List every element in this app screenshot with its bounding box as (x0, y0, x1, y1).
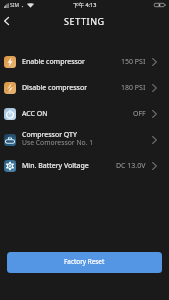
staticText: DC 13.0V (116, 161, 146, 171)
button[interactable]: Disable compressor (0, 75, 169, 101)
button[interactable]: Factory Reset (7, 252, 162, 273)
button[interactable]: ACC ON (0, 101, 169, 127)
button[interactable]: Compressor QTY (0, 127, 169, 153)
staticText: Use Comoressor No. 1 (22, 138, 94, 147)
staticText: Compressor QTY (22, 130, 77, 140)
staticText: OFF (133, 109, 146, 119)
staticText: ACC ON (22, 109, 48, 119)
button[interactable]: Enable compressor (0, 49, 169, 75)
button[interactable]: Min. Battery Voltage (0, 153, 169, 179)
staticText: Min. Battery Voltage (22, 161, 89, 171)
staticText: Enable compressor (22, 57, 85, 67)
staticText: 180 PSI (121, 83, 146, 93)
staticText: 150 PSI (121, 57, 146, 67)
staticText: Factory Reset (64, 257, 105, 266)
staticText: Disable compressor (22, 83, 88, 93)
staticText: SIM (10, 2, 19, 9)
staticText: 下午 4:13 (73, 1, 97, 9)
staticText: SETTING (64, 15, 105, 27)
button[interactable]: Back (0, 10, 13, 31)
